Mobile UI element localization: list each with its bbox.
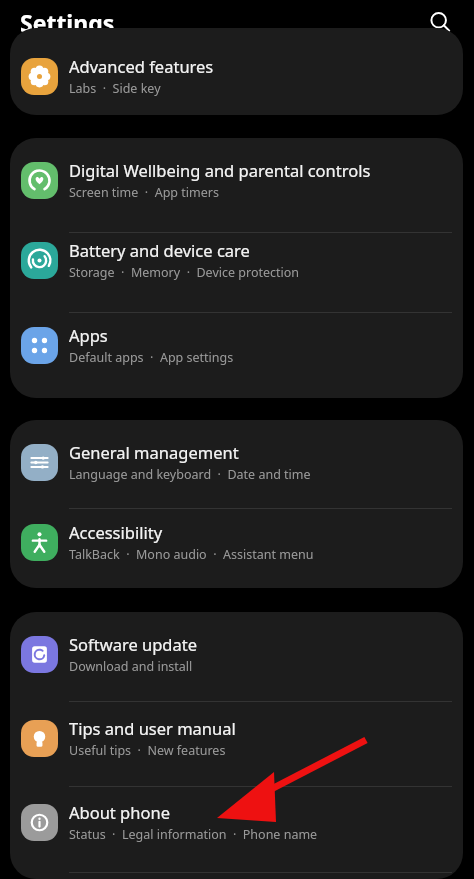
- staticText: Status · Legal information · Phone name: [69, 826, 318, 843]
- button[interactable]: Advanced features: [10, 50, 463, 102]
- button[interactable]: Tips and user manual: [10, 712, 463, 764]
- staticText: Tips and user manual: [69, 717, 236, 739]
- staticText: Settings: [20, 7, 115, 38]
- staticText: Accessibility: [69, 521, 163, 543]
- button[interactable]: Digital Wellbeing and parental controls: [10, 154, 463, 206]
- staticText: Download and install: [69, 658, 193, 675]
- staticText: TalkBack · Mono audio · Assistant menu: [69, 546, 314, 563]
- button[interactable]: Apps: [10, 319, 463, 371]
- button[interactable]: Software update: [10, 628, 463, 680]
- button[interactable]: General management: [10, 436, 463, 488]
- staticText: General management: [69, 441, 239, 463]
- staticText: Digital Wellbeing and parental controls: [69, 159, 371, 181]
- staticText: Advanced features: [69, 55, 214, 77]
- staticText: Storage · Memory · Device protection: [69, 264, 300, 281]
- button[interactable]: About phone: [10, 796, 463, 848]
- staticText: About phone: [69, 801, 170, 823]
- button[interactable]: Accessibility: [10, 516, 463, 568]
- staticText: Default apps · App settings: [69, 349, 234, 366]
- staticText: Apps: [69, 324, 108, 346]
- staticText: Battery and device care: [69, 239, 250, 261]
- staticText: Software update: [69, 633, 197, 655]
- staticText: Screen time · App timers: [69, 184, 219, 201]
- button[interactable]: Search: [422, 4, 458, 40]
- button[interactable]: Battery and device care: [10, 234, 463, 286]
- staticText: Language and keyboard · Date and time: [69, 466, 311, 483]
- staticText: Labs · Side key: [69, 80, 161, 97]
- staticText: Useful tips · New features: [69, 742, 226, 759]
